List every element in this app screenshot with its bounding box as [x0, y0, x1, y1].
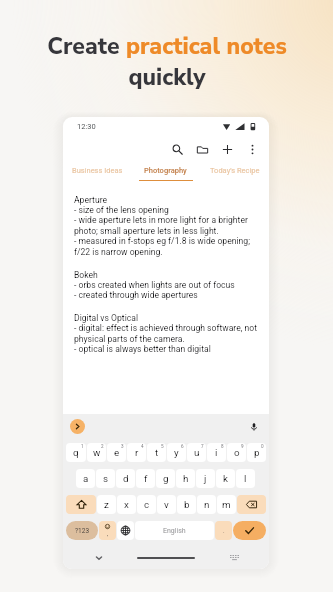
staticText: Aperture	[74, 195, 108, 205]
button[interactable]: s	[96, 469, 115, 488]
button[interactable]: o	[227, 443, 246, 462]
staticText: m	[222, 499, 231, 510]
button[interactable]: i	[207, 443, 226, 462]
staticText: l	[244, 473, 247, 484]
staticText: h	[183, 473, 189, 484]
staticText: k	[223, 473, 228, 484]
button[interactable]: Shift	[66, 495, 96, 514]
staticText: e	[114, 447, 120, 458]
staticText: t	[155, 447, 159, 458]
staticText: .	[223, 527, 225, 534]
staticText: i	[215, 447, 218, 458]
staticText: - orbs created when lights are out of fo…	[74, 280, 235, 290]
button[interactable]: p	[247, 443, 266, 462]
staticText: 1	[81, 444, 84, 449]
staticText: n	[204, 499, 210, 510]
button[interactable]: g	[156, 469, 175, 488]
staticText: a	[83, 473, 89, 484]
staticText: Photography	[144, 166, 187, 175]
staticText: Create practical notes	[47, 31, 287, 62]
staticText: z	[104, 499, 109, 510]
staticText: Business Ideas	[72, 166, 123, 175]
staticText: 12:30	[77, 122, 96, 131]
button[interactable]: k	[216, 469, 235, 488]
staticText: w	[93, 447, 101, 458]
staticText: quickly	[128, 62, 206, 93]
staticText: - created through wide apertures	[74, 290, 198, 300]
staticText: p	[254, 447, 260, 458]
button[interactable]: Switch keyboard	[225, 548, 245, 568]
button[interactable]: u	[187, 443, 206, 462]
button[interactable]: h	[176, 469, 195, 488]
staticText: d	[123, 473, 129, 484]
staticText: ,	[107, 530, 109, 537]
staticText: Bokeh	[74, 270, 98, 280]
button[interactable]: e	[107, 443, 126, 462]
button[interactable]: f	[136, 469, 155, 488]
staticText: - optical is always better than digital	[74, 344, 211, 354]
staticText: 7	[201, 444, 204, 449]
button[interactable]: Hide keyboard	[89, 548, 109, 568]
staticText: b	[184, 499, 190, 510]
button[interactable]: r	[127, 443, 146, 462]
staticText: ?123	[75, 527, 90, 535]
button[interactable]: v	[157, 495, 176, 514]
button[interactable]: z	[97, 495, 116, 514]
button[interactable]: Search	[165, 137, 190, 161]
staticText: v	[164, 499, 169, 510]
button[interactable]: More options	[240, 137, 265, 161]
staticText: 2	[101, 444, 104, 449]
staticText: y	[174, 447, 179, 458]
button[interactable]: y	[167, 443, 186, 462]
staticText: 9	[241, 444, 244, 449]
button[interactable]: j	[196, 469, 215, 488]
staticText: 0	[261, 444, 264, 449]
staticText: 8	[221, 444, 224, 449]
staticText: English	[163, 527, 186, 535]
button[interactable]: .	[215, 521, 232, 540]
button[interactable]: t	[147, 443, 166, 462]
button[interactable]: ,	[99, 521, 116, 540]
button[interactable]: Today's Recipe	[200, 163, 269, 183]
button[interactable]: Backspace	[237, 495, 266, 514]
staticText: o	[234, 447, 240, 458]
staticText: - digital: effect is achieved through so…	[74, 323, 258, 344]
staticText: f	[144, 473, 148, 484]
button[interactable]: n	[197, 495, 216, 514]
button[interactable]: a	[76, 469, 95, 488]
staticText: c	[144, 499, 150, 510]
staticText: 3	[121, 444, 124, 449]
button[interactable]: Voice input	[246, 419, 261, 434]
staticText: Digital vs Optical	[74, 313, 138, 323]
staticText: - measured in f-stops eg f/1.8 is wide o…	[74, 236, 258, 257]
button[interactable]: Enter	[233, 521, 266, 540]
staticText: g	[163, 473, 169, 484]
staticText: s	[103, 473, 109, 484]
button[interactable]: More suggestions	[70, 419, 85, 434]
button[interactable]: New note	[215, 137, 240, 161]
button[interactable]: c	[137, 495, 156, 514]
button[interactable]: Folders	[190, 137, 215, 161]
staticText: - wide aperture lets in more light for a…	[74, 215, 258, 236]
staticText: u	[194, 447, 200, 458]
button[interactable]: Business Ideas	[63, 163, 131, 183]
button[interactable]: Symbols	[66, 521, 98, 540]
staticText: r	[135, 447, 139, 458]
button[interactable]: b	[177, 495, 196, 514]
button[interactable]: x	[117, 495, 136, 514]
staticText: 5	[161, 444, 164, 449]
button[interactable]: l	[236, 469, 255, 488]
button[interactable]: Photography	[131, 163, 200, 183]
button[interactable]: d	[116, 469, 135, 488]
staticText: 4	[141, 444, 144, 449]
button[interactable]: Change language	[117, 521, 134, 540]
staticText: Today's Recipe	[210, 166, 260, 175]
button[interactable]: m	[217, 495, 236, 514]
button[interactable]: w	[87, 443, 106, 462]
button[interactable]: English	[135, 521, 214, 540]
button[interactable]: q	[66, 443, 86, 462]
staticText: x	[124, 499, 129, 510]
staticText: - size of the lens opening	[74, 205, 169, 215]
staticText: 6	[181, 444, 184, 449]
staticText: q	[73, 447, 79, 458]
